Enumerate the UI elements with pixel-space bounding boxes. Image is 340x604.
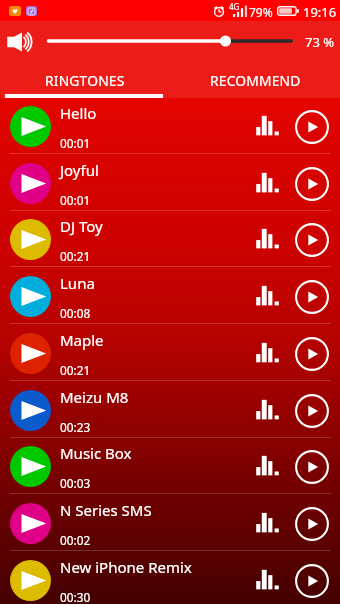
- button[interactable]: Volume slider: [44, 32, 296, 50]
- button[interactable]: Play: [295, 450, 329, 484]
- button[interactable]: New iPhone Remix: [0, 552, 340, 604]
- button[interactable]: Play: [295, 223, 329, 257]
- staticText: RECOMMEND: [210, 71, 301, 90]
- button[interactable]: DJ Toy: [0, 211, 340, 268]
- button[interactable]: Equalizer: [252, 280, 282, 314]
- button[interactable]: Play: [295, 280, 329, 314]
- button[interactable]: Play: [295, 564, 329, 598]
- button[interactable]: Equalizer: [252, 337, 282, 371]
- button[interactable]: Play: [295, 507, 329, 541]
- staticText: 19:16: [303, 3, 337, 21]
- button[interactable]: Equalizer: [252, 394, 282, 428]
- staticText: Meizu M8: [60, 387, 129, 407]
- staticText: Music Box: [60, 443, 132, 463]
- staticText: 79%: [249, 4, 273, 20]
- staticText: DJ Toy: [60, 216, 103, 236]
- button[interactable]: Music Box: [0, 438, 340, 495]
- staticText: RINGTONES: [45, 71, 125, 90]
- button[interactable]: Play: [295, 337, 329, 371]
- button[interactable]: Volume: [5, 31, 32, 53]
- staticText: 00:23: [60, 419, 91, 435]
- button[interactable]: Equalizer: [252, 167, 282, 201]
- staticText: 00:02: [60, 532, 91, 548]
- staticText: 00:01: [60, 135, 91, 151]
- staticText: Maple: [60, 330, 104, 350]
- staticText: 00:30: [60, 589, 91, 604]
- button[interactable]: Maple: [0, 325, 340, 382]
- button[interactable]: Equalizer: [252, 110, 282, 144]
- staticText: N Series SMS: [60, 500, 152, 520]
- button[interactable]: Equalizer: [252, 223, 282, 257]
- staticText: 00:03: [60, 475, 91, 491]
- staticText: Hello: [60, 103, 97, 123]
- staticText: Luna: [60, 273, 95, 293]
- button[interactable]: Joyful: [0, 155, 340, 212]
- button[interactable]: N Series SMS: [0, 495, 340, 552]
- button[interactable]: Equalizer: [252, 507, 282, 541]
- button[interactable]: Meizu M8: [0, 382, 340, 439]
- button[interactable]: Play: [295, 167, 329, 201]
- staticText: 4G: [229, 1, 240, 12]
- button[interactable]: Hello: [0, 98, 340, 155]
- button[interactable]: RECOMMEND: [170, 62, 340, 98]
- button[interactable]: RINGTONES: [0, 62, 170, 98]
- button[interactable]: Play: [295, 394, 329, 428]
- staticText: 00:21: [60, 248, 91, 264]
- button[interactable]: Equalizer: [252, 564, 282, 598]
- staticText: New iPhone Remix: [60, 557, 192, 577]
- staticText: 73 %: [305, 33, 335, 51]
- staticText: 00:08: [60, 305, 91, 321]
- button[interactable]: Play: [295, 110, 329, 144]
- staticText: 00:21: [60, 362, 91, 378]
- staticText: Joyful: [60, 160, 99, 180]
- staticText: 00:01: [60, 192, 91, 208]
- button[interactable]: Equalizer: [252, 450, 282, 484]
- button[interactable]: Luna: [0, 268, 340, 325]
